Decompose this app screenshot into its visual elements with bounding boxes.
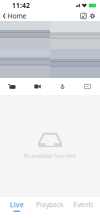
button[interactable]: Settings: [88, 11, 97, 21]
staticText: Playback: [36, 200, 64, 209]
button[interactable]: Live: [0, 197, 33, 218]
staticText: Live: [10, 200, 24, 209]
button[interactable]: Snapshot: [0, 78, 25, 95]
staticText: Home: [7, 12, 26, 20]
button[interactable]: Home: [0, 11, 30, 21]
staticText: 11:42: [12, 1, 30, 10]
button[interactable]: Playback: [33, 197, 67, 218]
button[interactable]: Gallery: [79, 11, 88, 21]
button[interactable]: Talk: [50, 78, 75, 95]
button[interactable]: Events: [67, 197, 100, 218]
staticText: Events: [73, 200, 93, 209]
button[interactable]: Record: [25, 78, 50, 95]
button[interactable]: Display: [75, 78, 100, 95]
staticText: No available functions: [23, 152, 76, 159]
